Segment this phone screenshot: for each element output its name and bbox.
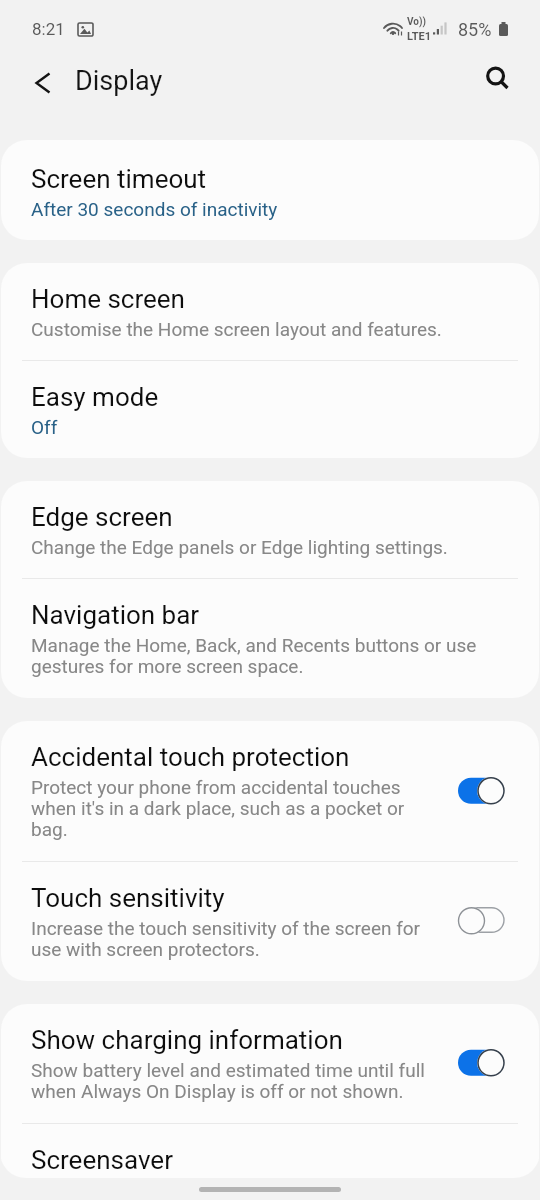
other: Home gesture handle [199,1187,341,1192]
staticText: Easy mode [31,382,159,412]
button[interactable]: Search [472,54,524,106]
staticText: Manage the Home, Back, and Recents butto… [31,634,507,678]
staticText: Home screen [31,284,185,314]
button[interactable]: Navigation bar [1,579,539,698]
staticText: Protect your phone from accidental touch… [31,776,444,841]
button[interactable]: Switch off [458,907,507,937]
staticText: Touch sensitivity [31,883,225,913]
button[interactable]: Switch on [458,777,507,807]
staticText: LTE1 [407,30,432,43]
staticText: Screen timeout [31,164,207,194]
staticText: Accidental touch protection [31,742,350,772]
button[interactable]: Edge screen [1,481,539,578]
button[interactable]: Easy mode [1,361,539,458]
staticText: 8:21 [32,19,65,39]
staticText: Change the Edge panels or Edge lighting … [31,536,448,558]
staticText: 85% [458,19,492,40]
button[interactable]: Navigate up [17,57,69,109]
staticText: After 30 seconds of inactivity [31,198,278,220]
staticText: Edge screen [31,502,173,532]
staticText: Navigation bar [31,600,200,630]
staticText: Customise the Home screen layout and fea… [31,318,442,340]
staticText: Increase the touch sensitivity of the sc… [31,917,444,961]
button[interactable]: Switch on [458,1049,507,1079]
button[interactable]: Screensaver [1,1124,539,1178]
staticText: Off [31,416,58,438]
button[interactable]: Home screen [1,263,539,360]
button[interactable]: Touch sensitivity [1,862,539,981]
button[interactable]: Accidental touch protection [1,721,539,861]
staticText: Show charging information [31,1025,343,1055]
button[interactable]: Screen timeout [1,140,539,240]
staticText: Show battery level and estimated time un… [31,1059,444,1103]
staticText: Vo)) [407,16,426,28]
staticText: Screensaver [31,1145,173,1175]
staticText: Display [75,65,163,97]
button[interactable]: Show charging information [1,1004,539,1123]
